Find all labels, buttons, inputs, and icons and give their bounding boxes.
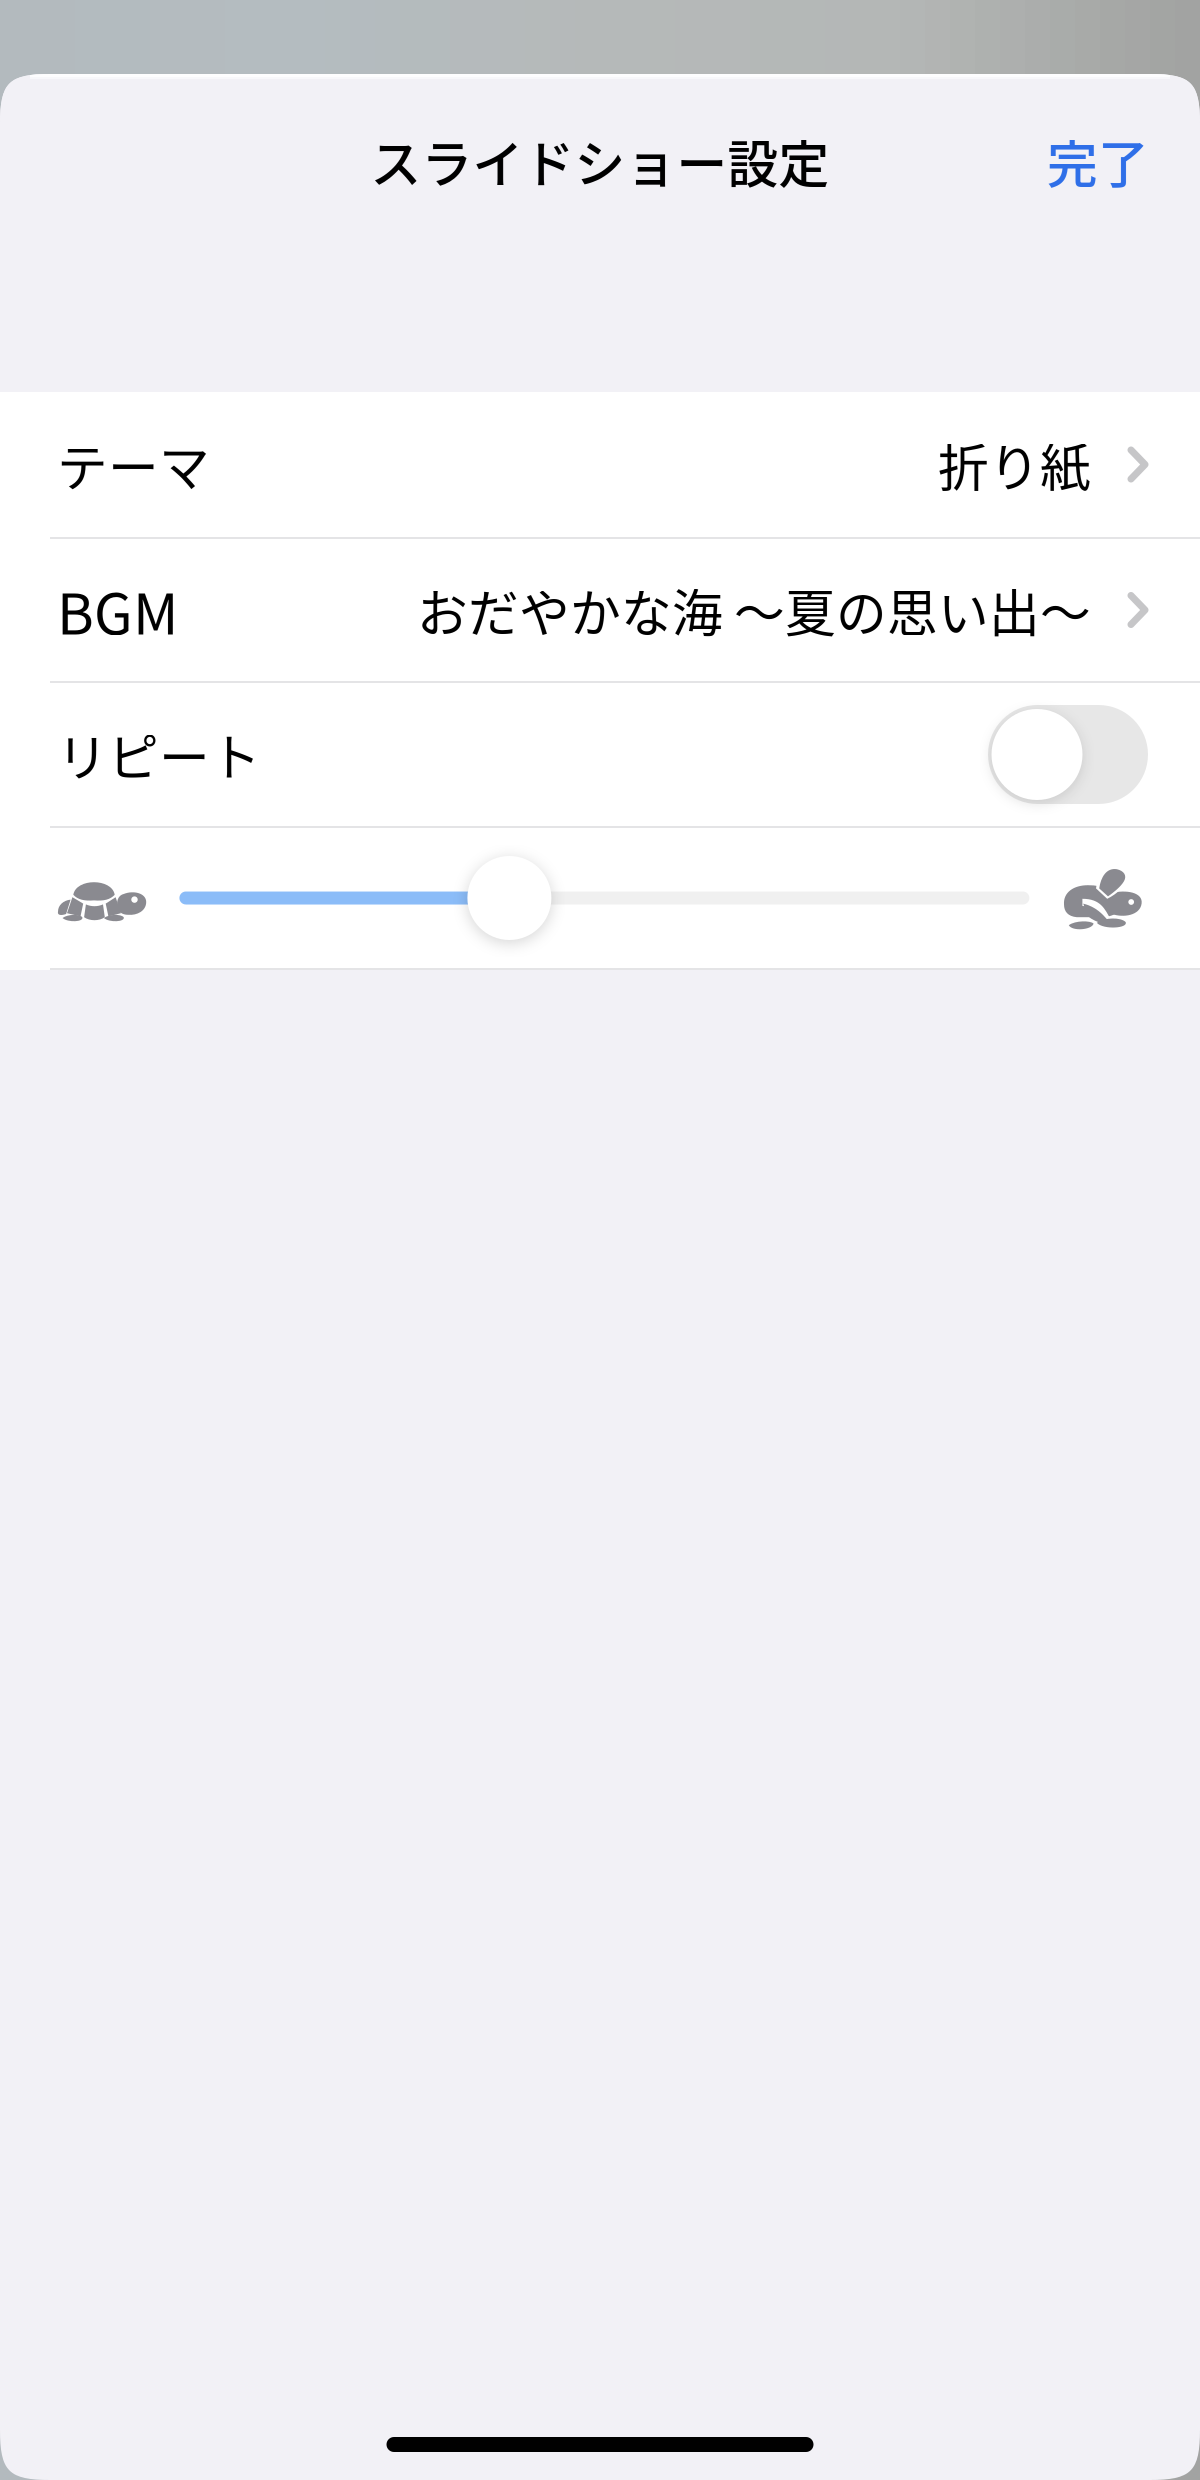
staticText: 折り紙: [938, 428, 1091, 501]
staticText: リピート: [57, 718, 261, 791]
staticText: おだやかな海 〜夏の思い出〜: [417, 573, 1091, 647]
staticText: スライドショー設定: [370, 124, 829, 198]
button[interactable]: 完了: [1007, 96, 1200, 226]
button[interactable]: スライドの速さ: [179, 856, 1029, 940]
staticText: BGM: [57, 569, 178, 651]
button[interactable]: テーマ: [0, 392, 1200, 537]
staticText: 完了: [1047, 124, 1149, 198]
staticText: テーマ: [57, 428, 210, 501]
button[interactable]: リピート: [0, 683, 1200, 826]
button[interactable]: BGM: [0, 539, 1200, 681]
